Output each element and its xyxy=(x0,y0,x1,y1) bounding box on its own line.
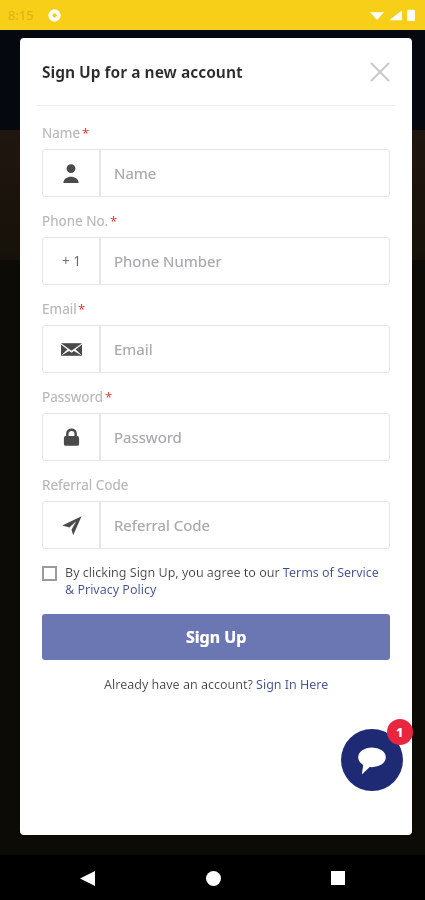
staticText: * xyxy=(110,212,118,230)
staticText: By clicking Sign Up, you agree to our Te… xyxy=(65,564,390,598)
button[interactable]: Back xyxy=(70,861,104,895)
button[interactable]: Close xyxy=(362,54,398,90)
staticText: Phone No. xyxy=(42,212,109,230)
staticText: Email xyxy=(42,300,77,318)
button[interactable]: Chat support xyxy=(341,729,403,791)
staticText: Name xyxy=(42,124,81,142)
button[interactable]: Referral Code xyxy=(42,501,390,549)
staticText: 1 xyxy=(396,723,404,741)
button[interactable]: Recent apps xyxy=(321,861,355,895)
button[interactable]: Password xyxy=(42,413,390,461)
staticText: Sign Up xyxy=(186,626,247,648)
staticText: * xyxy=(82,124,90,142)
staticText: * xyxy=(105,388,113,406)
staticText: + 1 xyxy=(62,252,81,270)
staticText: Referral Code xyxy=(42,476,129,494)
staticText: 8:15 xyxy=(8,6,34,24)
button[interactable]: Sign Up xyxy=(42,614,390,660)
staticText: Referral Code xyxy=(114,515,210,535)
button[interactable]: Name xyxy=(42,149,390,197)
staticText: Name xyxy=(114,163,157,183)
button[interactable]: Home xyxy=(196,861,230,895)
button[interactable]: + 1 xyxy=(42,237,390,285)
button[interactable]: Already have an account? Sign In Here xyxy=(42,676,390,693)
staticText: Password xyxy=(42,388,104,406)
staticText: Email xyxy=(114,339,153,359)
button[interactable]: Email xyxy=(42,325,390,373)
button[interactable]: By clicking Sign Up, you agree to our Te… xyxy=(42,564,390,598)
staticText: * xyxy=(78,300,86,318)
staticText: Sign Up for a new account xyxy=(42,61,243,82)
staticText: Phone Number xyxy=(114,251,222,271)
staticText: Already have an account? Sign In Here xyxy=(104,676,329,693)
staticText: Password xyxy=(114,427,182,447)
